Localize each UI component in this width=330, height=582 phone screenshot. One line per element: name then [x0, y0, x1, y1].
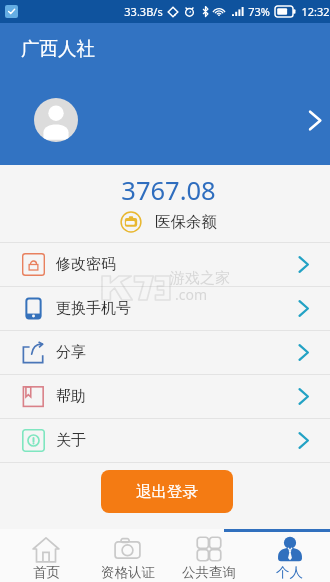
other: 更换手机号 — [22, 297, 45, 320]
staticText: 更换手机号 — [56, 299, 131, 318]
other: 关于 — [22, 429, 45, 452]
other: 个人信息 — [308, 110, 322, 131]
button[interactable]: 首页 — [5, 532, 87, 582]
staticText: 游戏之家 — [170, 269, 230, 288]
staticText: 退出登录 — [136, 482, 198, 502]
staticText: .com — [175, 285, 208, 304]
button[interactable]: 公共查询 — [168, 532, 249, 582]
staticText: 分享 — [56, 343, 86, 362]
staticText: 33.3B/s — [124, 4, 163, 19]
button[interactable]: 个人 — [249, 532, 330, 582]
staticText: 3767.08 — [121, 173, 216, 208]
staticText: 修改密码 — [56, 255, 116, 274]
staticText: 关于 — [56, 431, 86, 450]
staticText: 帮助 — [56, 387, 86, 406]
button[interactable]: 更换手机号 — [0, 287, 330, 330]
button[interactable]: 修改密码 — [0, 243, 330, 286]
button[interactable]: 关于 — [0, 419, 330, 462]
staticText: 73% — [248, 4, 270, 19]
staticText: 广西人社 — [21, 37, 95, 60]
other: 修改密码 — [22, 253, 45, 276]
button[interactable]: 退出登录 — [101, 470, 233, 513]
button[interactable]: 资格认证 — [87, 532, 168, 582]
staticText: 12:32 — [301, 4, 330, 19]
staticText: 医保余额 — [155, 212, 217, 232]
staticText: 个人 — [276, 564, 303, 581]
button[interactable]: 帮助 — [0, 375, 330, 418]
staticText: 资格认证 — [101, 564, 155, 581]
staticText: 公共查询 — [182, 564, 236, 581]
staticText: 首页 — [33, 564, 60, 581]
other: 分享 — [22, 341, 45, 364]
button[interactable]: 分享 — [0, 331, 330, 374]
other: 帮助 — [22, 385, 45, 408]
button[interactable]: 个人信息 — [0, 74, 330, 165]
